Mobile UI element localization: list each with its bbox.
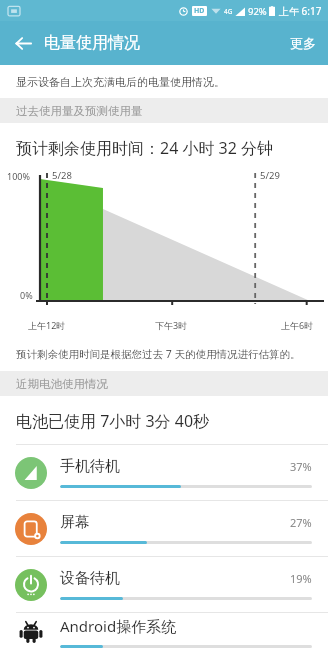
staticText: 4G — [224, 7, 233, 16]
staticText: HD — [194, 6, 205, 16]
staticText: 屏幕 — [60, 513, 290, 532]
staticText: 0% — [20, 289, 33, 301]
staticText: 预计剩余使用时间：24 小时 32 分钟 — [16, 137, 274, 159]
staticText: 上午 6:17 — [279, 4, 322, 18]
staticText: 100% — [7, 170, 30, 182]
staticText: 手机待机 — [60, 457, 290, 476]
staticText: 5/28 — [52, 169, 72, 182]
button[interactable]: Android操作系统 — [0, 613, 328, 650]
staticText: 电量使用情况 — [44, 33, 140, 53]
staticText: 电池已使用 7小时 3分 40秒 — [16, 410, 210, 432]
button[interactable]: 屏幕 — [0, 501, 328, 556]
staticText: 5/29 — [260, 169, 280, 182]
button[interactable]: Back — [6, 26, 40, 60]
staticText: 预计剩余使用时间是根据您过去 7 天的使用情况进行估算的。 — [16, 347, 301, 361]
button[interactable]: 更多 — [278, 25, 328, 61]
staticText: 上午6时 — [281, 319, 314, 331]
staticText: 37% — [290, 459, 312, 474]
staticText: 显示设备自上次充满电后的电量使用情况。 — [16, 75, 225, 89]
staticText: 19% — [290, 571, 312, 586]
staticText: Android操作系统 — [60, 616, 312, 636]
staticText: 下午3时 — [155, 319, 188, 331]
button[interactable]: 设备待机 — [0, 557, 328, 612]
staticText: 近期电池使用情况 — [16, 377, 108, 391]
staticText: 设备待机 — [60, 569, 290, 588]
staticText: 更多 — [290, 35, 316, 51]
staticText: 上午12时 — [28, 319, 66, 331]
staticText: 92% — [248, 5, 267, 18]
button[interactable]: 手机待机 — [0, 445, 328, 500]
staticText: 过去使用量及预测使用量 — [16, 104, 143, 118]
staticText: 27% — [290, 515, 312, 530]
